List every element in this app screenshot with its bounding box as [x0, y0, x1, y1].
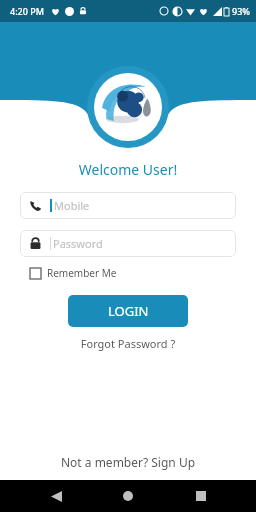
button[interactable]: Back [39, 480, 73, 512]
staticText: Remember Me [47, 266, 117, 280]
staticText: 93% [232, 5, 250, 17]
staticText: Welcome User! [0, 160, 256, 179]
staticText: Mobile [54, 198, 90, 213]
button[interactable]: Mobile [20, 192, 236, 219]
staticText: Password [53, 236, 103, 251]
button[interactable]: Remember Me [30, 266, 117, 280]
button[interactable]: Password [20, 230, 236, 257]
button[interactable]: Home [111, 480, 145, 512]
button[interactable]: Not a member? Sign Up [0, 454, 256, 470]
staticText: LOGIN [108, 302, 149, 320]
button[interactable]: Recent apps [184, 480, 218, 512]
button[interactable]: Forgot Password ? [0, 336, 256, 351]
staticText: 4:20 PM [10, 5, 44, 17]
button[interactable]: LOGIN [68, 295, 188, 327]
